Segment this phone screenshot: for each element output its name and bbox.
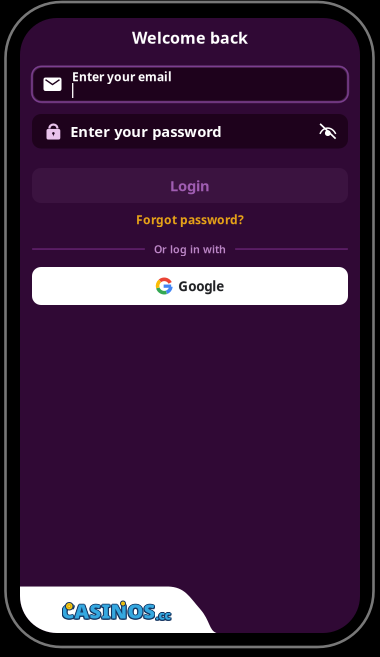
staticText: .cc: [156, 608, 171, 624]
button[interactable]: Login: [32, 168, 348, 203]
staticText: CASINOS: [61, 597, 155, 623]
staticText: Enter your password: [70, 121, 221, 141]
staticText: Forgot password?: [136, 211, 244, 227]
staticText: CASINOS: [61, 598, 155, 625]
staticText: CASINOS: [62, 598, 156, 625]
staticText: Welcome back: [132, 27, 248, 48]
staticText: .cc: [155, 607, 170, 623]
staticText: .cc: [155, 606, 170, 622]
staticText: Google: [178, 277, 224, 295]
staticText: .cc: [156, 607, 171, 623]
staticText: CASINOS: [61, 597, 155, 624]
staticText: CASINOS: [61, 598, 155, 625]
staticText: Enter your email: [72, 68, 172, 84]
staticText: .cc: [155, 608, 170, 624]
staticText: .cc: [155, 607, 170, 623]
staticText: CASINOS: [62, 597, 156, 624]
staticText: Login: [170, 176, 210, 195]
button[interactable]: Enter your password: [32, 114, 348, 148]
staticText: CASINOS: [61, 597, 155, 624]
staticText: .cc: [155, 608, 170, 624]
staticText: Or log in with: [154, 242, 226, 256]
button[interactable]: Forgot password?: [136, 213, 244, 226]
button[interactable]: Google: [32, 267, 348, 305]
